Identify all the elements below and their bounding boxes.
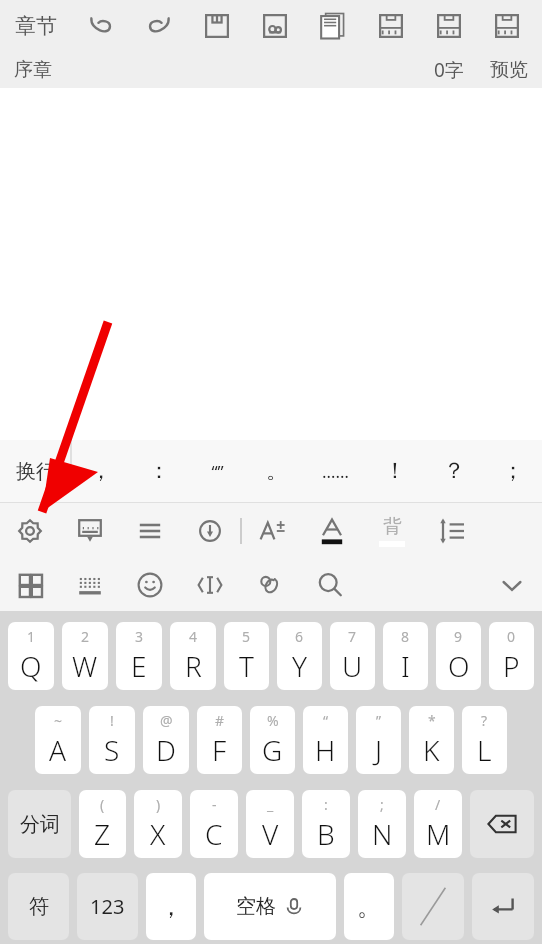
button[interactable]: Emoji bbox=[120, 559, 180, 611]
button[interactable]: ？ bbox=[424, 440, 483, 502]
staticText: 背 bbox=[383, 515, 402, 539]
button[interactable]: ！ bbox=[365, 440, 424, 502]
button[interactable]: 6 bbox=[277, 622, 322, 690]
staticText: 0 bbox=[507, 627, 516, 646]
button[interactable]: 预览 bbox=[490, 58, 528, 82]
button[interactable]: _ bbox=[246, 790, 294, 858]
staticText: N bbox=[372, 815, 393, 853]
staticText: T bbox=[239, 647, 254, 685]
staticText: _ bbox=[267, 795, 274, 814]
button[interactable]: Settings bbox=[0, 503, 60, 559]
staticText: G bbox=[262, 731, 283, 769]
button[interactable]: Search bbox=[300, 559, 360, 611]
button[interactable]: * bbox=[409, 706, 454, 774]
button[interactable]: Attachment bbox=[240, 559, 300, 611]
staticText: 分词 bbox=[20, 812, 60, 837]
button[interactable]: Redo bbox=[130, 0, 188, 52]
button[interactable]: ! bbox=[89, 706, 135, 774]
button[interactable]: 2 bbox=[62, 622, 108, 690]
button[interactable]: ~ bbox=[35, 706, 81, 774]
button[interactable]: ; bbox=[358, 790, 406, 858]
staticText: ？ bbox=[443, 457, 465, 485]
button[interactable]: ) bbox=[134, 790, 182, 858]
button[interactable]: 符 bbox=[8, 873, 69, 940]
button[interactable]: % bbox=[250, 706, 295, 774]
button[interactable]: # bbox=[197, 706, 242, 774]
button[interactable]: 8 bbox=[383, 622, 428, 690]
button[interactable]: Save bbox=[188, 0, 246, 52]
button[interactable]: - bbox=[190, 790, 238, 858]
button[interactable]: ” bbox=[356, 706, 401, 774]
button[interactable]: ? bbox=[462, 706, 507, 774]
button[interactable]: Insert bbox=[180, 559, 240, 611]
button[interactable]: 0 bbox=[489, 622, 534, 690]
button[interactable]: Undo bbox=[72, 0, 130, 52]
staticText: 章节 bbox=[15, 13, 57, 39]
button[interactable]: 换行 bbox=[0, 440, 72, 502]
staticText: “ bbox=[323, 711, 329, 730]
staticText: ！ bbox=[384, 457, 406, 485]
button[interactable]: 。 bbox=[247, 440, 306, 502]
button[interactable]: 4 bbox=[170, 622, 216, 690]
staticText: V bbox=[262, 815, 279, 853]
button[interactable]: Panels bbox=[0, 559, 60, 611]
button[interactable]: 背 bbox=[362, 503, 422, 559]
staticText: ” bbox=[376, 711, 382, 730]
staticText: M bbox=[426, 815, 451, 853]
button[interactable]: Download bbox=[180, 503, 240, 559]
button[interactable]: : bbox=[302, 790, 350, 858]
staticText: 。 bbox=[266, 457, 288, 485]
staticText: 0字 bbox=[434, 57, 464, 83]
button[interactable]: ， bbox=[146, 873, 196, 940]
staticText: * bbox=[428, 711, 436, 730]
button[interactable]: ； bbox=[483, 440, 542, 502]
button[interactable]: 1 bbox=[8, 622, 54, 690]
staticText: Y bbox=[292, 647, 307, 685]
button[interactable]: “ bbox=[303, 706, 348, 774]
button[interactable]: Enter bbox=[472, 873, 534, 940]
button[interactable]: ( bbox=[79, 790, 126, 858]
button[interactable]: ， bbox=[72, 440, 130, 502]
button[interactable]: 3 bbox=[116, 622, 162, 690]
button[interactable]: Line spacing bbox=[422, 503, 482, 559]
staticText: 换行 bbox=[16, 459, 56, 484]
button[interactable] bbox=[402, 873, 464, 940]
button[interactable]: Collapse bbox=[482, 559, 542, 611]
button[interactable]: 9 bbox=[436, 622, 481, 690]
button[interactable]: Export TXT bbox=[362, 0, 420, 52]
button[interactable]: 空格 bbox=[204, 873, 336, 940]
button[interactable]: 分词 bbox=[8, 790, 71, 858]
button[interactable]: 章节 bbox=[0, 0, 72, 52]
button[interactable]: Export PNG bbox=[478, 0, 536, 52]
button[interactable]: ： bbox=[130, 440, 188, 502]
staticText: 2 bbox=[81, 627, 90, 646]
button[interactable]: / bbox=[414, 790, 462, 858]
button[interactable]: Keyboard bbox=[60, 559, 120, 611]
staticText: 符 bbox=[29, 894, 49, 919]
button[interactable]: 7 bbox=[330, 622, 375, 690]
button[interactable]: Text color bbox=[302, 503, 362, 559]
button[interactable]: Backspace bbox=[470, 790, 534, 858]
staticText: ， bbox=[159, 892, 183, 922]
button[interactable]: @ bbox=[143, 706, 189, 774]
button[interactable]: 。 bbox=[344, 873, 394, 940]
staticText: ~ bbox=[54, 711, 63, 730]
staticText: B bbox=[317, 815, 335, 853]
staticText: 6 bbox=[295, 627, 304, 646]
button[interactable]: Export DOC bbox=[420, 0, 478, 52]
staticText: 预览 bbox=[490, 58, 528, 82]
button[interactable]: Font size bbox=[242, 503, 302, 559]
button[interactable]: 5 bbox=[224, 622, 269, 690]
button[interactable]: Keyboard panel bbox=[60, 503, 120, 559]
staticText: S bbox=[104, 731, 120, 769]
button[interactable]: Cloud save bbox=[246, 0, 304, 52]
button[interactable]: Export all bbox=[304, 0, 362, 52]
staticText: X bbox=[150, 815, 166, 853]
button[interactable]: Align bbox=[120, 503, 180, 559]
button[interactable]: …… bbox=[306, 440, 365, 502]
staticText: ; bbox=[380, 795, 384, 814]
staticText: “” bbox=[211, 460, 224, 483]
button[interactable]: “” bbox=[188, 440, 247, 502]
button[interactable]: 123 bbox=[77, 873, 138, 940]
staticText: 空格 bbox=[236, 894, 276, 919]
